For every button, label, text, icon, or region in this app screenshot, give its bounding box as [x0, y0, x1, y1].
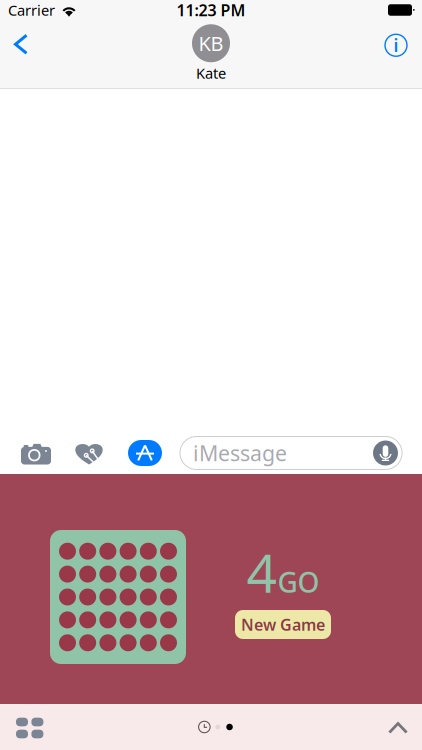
button[interactable]: Expand [374, 703, 422, 750]
button[interactable]: iMessage [180, 436, 402, 469]
staticText: GO [277, 563, 319, 600]
staticText: Kate [196, 63, 226, 83]
staticText: Carrier [8, 0, 55, 20]
staticText: 11:23 PM [176, 0, 245, 21]
button[interactable]: New Game [235, 610, 331, 639]
button[interactable]: Details [378, 28, 414, 62]
button[interactable]: Recents [199, 721, 210, 733]
button[interactable]: Camera [11, 433, 61, 473]
button[interactable]: KB [151, 24, 271, 83]
button[interactable]: Apps [0, 703, 57, 750]
staticText: iMessage [193, 439, 287, 467]
staticText: New Game [241, 614, 325, 635]
button[interactable]: Digital Touch [61, 433, 117, 473]
staticText: i [393, 34, 398, 57]
staticText: KB [198, 30, 223, 57]
button[interactable]: Back [2, 27, 40, 61]
staticText: 4 [246, 537, 277, 607]
button[interactable]: App Store [117, 433, 173, 473]
